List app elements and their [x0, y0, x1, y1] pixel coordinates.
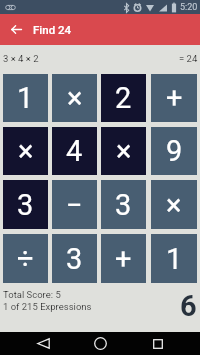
- button[interactable]: 1: [3, 74, 48, 122]
- button[interactable]: Home: [85, 332, 115, 355]
- button[interactable]: 4: [52, 127, 97, 175]
- button[interactable]: ×: [101, 127, 146, 175]
- staticText: +: [166, 81, 183, 115]
- button[interactable]: ÷: [3, 234, 48, 283]
- button[interactable]: +: [101, 234, 146, 283]
- button[interactable]: ×: [52, 74, 97, 122]
- staticText: 1: [17, 81, 34, 115]
- button[interactable]: Back: [28, 332, 58, 355]
- staticText: 9: [166, 134, 183, 168]
- staticText: 6: [180, 289, 197, 323]
- staticText: ×: [67, 81, 83, 115]
- button[interactable]: 3: [3, 180, 48, 229]
- button[interactable]: 3: [52, 234, 97, 283]
- button[interactable]: Recents: [143, 332, 173, 355]
- button[interactable]: 2: [101, 74, 146, 122]
- staticText: 4: [66, 134, 83, 168]
- button[interactable]: Back: [0, 14, 31, 45]
- staticText: 3: [66, 242, 83, 276]
- staticText: 3: [17, 188, 34, 222]
- staticText: 1: [166, 242, 183, 276]
- staticText: 5:20: [180, 2, 198, 13]
- staticText: 3 × 4 × 2: [3, 53, 39, 64]
- staticText: 3: [115, 188, 132, 222]
- button[interactable]: ×: [151, 180, 197, 229]
- button[interactable]: 3: [101, 180, 146, 229]
- staticText: Total Score: 5: [3, 289, 61, 300]
- staticText: ×: [116, 134, 132, 168]
- staticText: ×: [166, 188, 182, 222]
- staticText: Find 24: [33, 23, 72, 36]
- staticText: 2: [115, 81, 132, 115]
- button[interactable]: ×: [3, 127, 48, 175]
- staticText: 1 of 215 Expressions: [3, 301, 92, 312]
- staticText: ÷: [17, 242, 34, 276]
- staticText: = 24: [179, 53, 198, 64]
- staticText: −: [66, 188, 83, 222]
- button[interactable]: −: [52, 180, 97, 229]
- staticText: ×: [18, 134, 34, 168]
- button[interactable]: +: [151, 74, 197, 122]
- button[interactable]: 9: [151, 127, 197, 175]
- staticText: +: [115, 242, 132, 276]
- button[interactable]: 1: [151, 234, 197, 283]
